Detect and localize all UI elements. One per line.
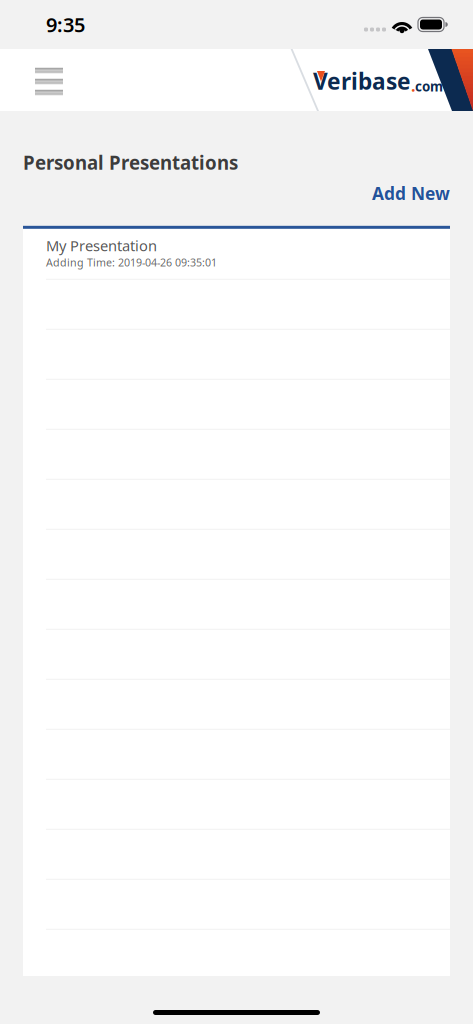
staticText: My Presentation xyxy=(46,236,157,255)
staticText: Add New xyxy=(372,182,450,205)
staticText: . xyxy=(411,75,415,96)
button[interactable]: Add New xyxy=(360,176,473,211)
staticText: Veribase xyxy=(313,66,411,96)
staticText: com xyxy=(415,77,443,95)
button[interactable]: My Presentation xyxy=(23,229,450,279)
staticText: Personal Presentations xyxy=(23,150,238,175)
staticText: Adding Time: 2019-04-26 09:35:01 xyxy=(46,255,217,269)
staticText: 9:35 xyxy=(46,11,85,38)
button[interactable]: Menu xyxy=(0,49,85,111)
